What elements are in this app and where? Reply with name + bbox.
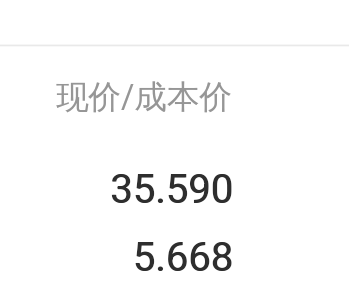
staticText: 5.668 <box>0 234 233 281</box>
staticText: 5.668 <box>1 234 234 281</box>
staticText: 现价/成本价 <box>56 77 232 118</box>
other: Section divider <box>0 0 349 283</box>
button[interactable]: 现价/成本价 <box>0 0 349 283</box>
staticText: 35.590 <box>0 166 233 213</box>
staticText: 35.590 <box>1 166 234 213</box>
